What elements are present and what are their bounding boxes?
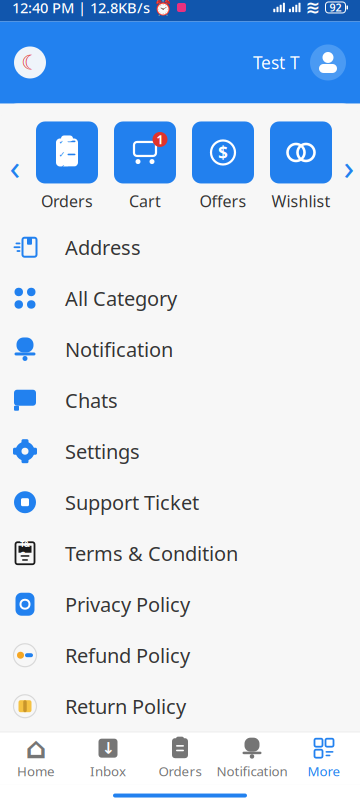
button[interactable]: Notification bbox=[216, 732, 288, 784]
staticText: Home bbox=[17, 762, 55, 780]
staticText: Cart bbox=[129, 190, 161, 212]
staticText: ≋ bbox=[305, 0, 320, 17]
staticText: Support Ticket bbox=[65, 489, 199, 515]
button[interactable]: Orders bbox=[144, 732, 216, 784]
button[interactable]: Refund Policy bbox=[0, 630, 360, 681]
staticText: ✓ bbox=[58, 150, 65, 159]
staticText: Test T bbox=[253, 51, 300, 74]
staticText: Orders bbox=[41, 190, 93, 212]
staticText: Address bbox=[65, 234, 141, 260]
staticText: Inbox bbox=[90, 762, 126, 780]
staticText: Notification bbox=[65, 336, 173, 362]
staticText: Settings bbox=[65, 438, 140, 464]
staticText: All Category bbox=[65, 285, 177, 311]
button[interactable]: Settings bbox=[0, 426, 360, 477]
staticText: Return Policy bbox=[65, 693, 186, 719]
button[interactable]: Return Policy bbox=[0, 681, 360, 732]
staticText: › bbox=[343, 144, 354, 190]
staticText: Offers bbox=[199, 190, 246, 212]
button[interactable]: Wishlist bbox=[262, 121, 340, 212]
staticText: ☾ bbox=[21, 51, 39, 74]
staticText: ↓ bbox=[101, 739, 114, 757]
staticText: ‹ bbox=[9, 144, 20, 190]
staticText: Wishlist bbox=[271, 190, 330, 212]
button[interactable]: Chats bbox=[0, 375, 360, 426]
staticText: ⏰ bbox=[150, 0, 172, 17]
staticText: Orders bbox=[158, 762, 201, 780]
button[interactable]: T&C bbox=[0, 528, 360, 579]
staticText: Notification bbox=[216, 762, 287, 780]
button[interactable]: ✓ bbox=[28, 121, 106, 212]
staticText: Chats bbox=[65, 387, 118, 413]
button[interactable]: ⌂ bbox=[0, 732, 72, 784]
staticText: 12:40 PM | 12.8KB/s bbox=[12, 0, 150, 17]
staticText: More bbox=[307, 762, 340, 780]
button[interactable]: Privacy Policy bbox=[0, 579, 360, 630]
button[interactable]: Address bbox=[0, 222, 360, 273]
staticText: 92 bbox=[329, 0, 341, 15]
staticText: Terms & Condition bbox=[65, 540, 238, 566]
staticText: Privacy Policy bbox=[65, 591, 190, 617]
staticText: ✓ bbox=[58, 163, 65, 172]
button[interactable]: ↓ bbox=[72, 732, 144, 784]
button[interactable]: 1 bbox=[106, 121, 184, 212]
button[interactable]: Support Ticket bbox=[0, 477, 360, 528]
staticText: T&C bbox=[20, 539, 30, 560]
button[interactable]: Profile, Test T bbox=[253, 44, 346, 80]
staticText: ⌂ bbox=[25, 731, 46, 765]
staticText: ✓ bbox=[58, 137, 65, 146]
staticText: $ bbox=[218, 141, 228, 164]
staticText: Refund Policy bbox=[65, 642, 190, 668]
button[interactable]: Next bbox=[340, 137, 358, 197]
button[interactable]: $ bbox=[184, 121, 262, 212]
staticText: 1 bbox=[156, 131, 163, 147]
button[interactable]: Previous bbox=[2, 137, 28, 197]
button[interactable]: App logo bbox=[14, 46, 46, 78]
button[interactable]: Notification bbox=[0, 324, 360, 375]
button[interactable]: More bbox=[288, 732, 360, 784]
button[interactable]: All Category bbox=[0, 273, 360, 324]
